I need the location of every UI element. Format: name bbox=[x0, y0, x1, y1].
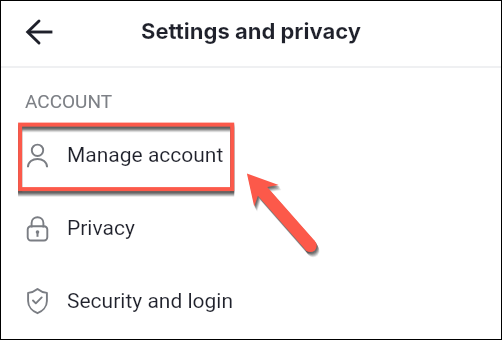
button[interactable]: Security and login bbox=[0, 265, 502, 338]
button[interactable]: Privacy bbox=[0, 192, 502, 265]
button[interactable]: Manage account bbox=[0, 119, 502, 192]
staticText: Security and login bbox=[67, 289, 234, 314]
staticText: Manage account bbox=[67, 143, 224, 168]
button[interactable]: Back bbox=[17, 9, 63, 55]
staticText: ACCOUNT bbox=[25, 90, 113, 112]
staticText: Privacy bbox=[67, 216, 135, 241]
staticText: Settings and privacy bbox=[141, 18, 361, 45]
